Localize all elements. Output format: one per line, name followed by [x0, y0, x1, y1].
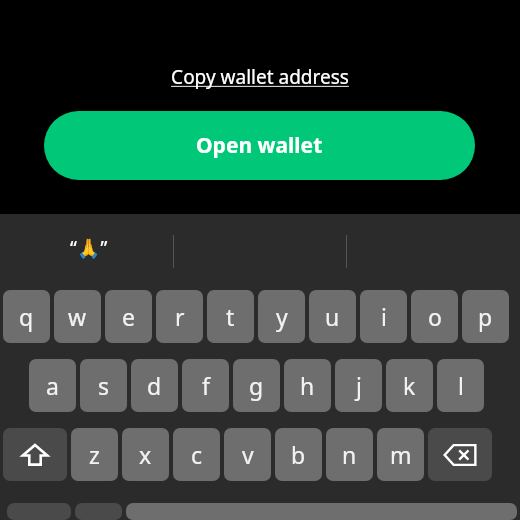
staticText: f [202, 370, 210, 401]
button[interactable]: u [309, 290, 356, 343]
staticText: h [300, 370, 315, 401]
button[interactable]: Copy wallet address [167, 62, 353, 92]
staticText: s [98, 370, 110, 401]
button[interactable]: s [80, 359, 127, 412]
button[interactable]: Open wallet [44, 111, 475, 180]
button[interactable]: a [29, 359, 76, 412]
button[interactable]: h [284, 359, 331, 412]
staticText: a [46, 370, 59, 401]
staticText: n [342, 439, 357, 470]
staticText: p [478, 301, 493, 332]
staticText: b [291, 439, 306, 470]
button[interactable]: m [377, 428, 424, 481]
staticText: Copy wallet address [171, 64, 349, 90]
button[interactable]: Emoji [75, 503, 122, 520]
staticText: c [191, 439, 203, 470]
staticText: v [242, 439, 254, 470]
staticText: r [175, 301, 185, 332]
button[interactable]: e [105, 290, 152, 343]
button[interactable]: o [411, 290, 458, 343]
button[interactable]: b [275, 428, 322, 481]
staticText: t [226, 301, 235, 332]
button[interactable]: d [131, 359, 178, 412]
staticText: m [390, 439, 412, 470]
button[interactable]: n [326, 428, 373, 481]
staticText: d [147, 370, 162, 401]
staticText: q [19, 301, 34, 332]
staticText: g [249, 370, 264, 401]
button[interactable]: i [360, 290, 407, 343]
button[interactable]: q [3, 290, 50, 343]
staticText: y [276, 301, 288, 332]
button[interactable]: “🙏” [58, 214, 120, 282]
button[interactable]: c [173, 428, 220, 481]
staticText: “🙏” [70, 235, 108, 261]
staticText: w [68, 301, 87, 332]
staticText: e [122, 301, 135, 332]
button[interactable]: t [207, 290, 254, 343]
staticText: Open wallet [196, 131, 323, 160]
staticText: i [381, 301, 387, 332]
staticText: x [139, 439, 152, 470]
button[interactable]: x [122, 428, 169, 481]
button[interactable]: y [258, 290, 305, 343]
button[interactable]: f [182, 359, 229, 412]
button[interactable]: k [386, 359, 433, 412]
button[interactable]: w [54, 290, 101, 343]
button[interactable]: Backspace [428, 428, 492, 481]
button[interactable]: Symbols [7, 503, 71, 520]
button[interactable]: l [437, 359, 484, 412]
button[interactable]: Shift [3, 428, 67, 481]
button[interactable]: v [224, 428, 271, 481]
staticText: l [458, 370, 464, 401]
button[interactable]: g [233, 359, 280, 412]
button[interactable]: z [71, 428, 118, 481]
staticText: k [403, 370, 416, 401]
staticText: j [356, 370, 362, 401]
button[interactable]: Space [126, 503, 517, 520]
staticText: u [325, 301, 340, 332]
staticText: z [89, 439, 100, 470]
staticText: o [428, 301, 442, 332]
button[interactable]: r [156, 290, 203, 343]
button[interactable]: j [335, 359, 382, 412]
button[interactable]: p [462, 290, 509, 343]
